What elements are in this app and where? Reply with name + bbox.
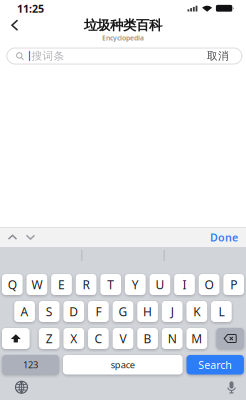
button[interactable]: Done: [210, 230, 246, 244]
staticText: Encyclopedia: [102, 33, 144, 42]
button[interactable]: Delete: [216, 328, 244, 349]
staticText: Search: [198, 358, 232, 372]
staticText: 搜词条: [32, 49, 65, 62]
staticText: F: [95, 303, 101, 319]
button[interactable]: Dictation: [227, 381, 246, 393]
staticText: E: [58, 276, 65, 292]
staticText: C: [94, 330, 102, 346]
button[interactable]: J: [162, 301, 183, 322]
staticText: A: [21, 303, 29, 319]
staticText: J: [171, 303, 174, 319]
staticText: B: [144, 330, 152, 346]
button[interactable]: M: [186, 328, 207, 349]
staticText: S: [46, 303, 53, 319]
button[interactable]: Search: [186, 355, 244, 374]
staticText: M: [191, 330, 202, 346]
staticText: Y: [132, 276, 139, 292]
button[interactable]: P: [223, 274, 244, 295]
button[interactable]: V: [113, 328, 133, 349]
button[interactable]: B: [137, 328, 158, 349]
button[interactable]: space: [63, 355, 183, 374]
button[interactable]: Q: [2, 274, 23, 295]
staticText: D: [69, 303, 78, 319]
button[interactable]: G: [113, 301, 133, 322]
staticText: G: [118, 303, 127, 319]
staticText: 123: [23, 359, 38, 371]
button[interactable]: U: [150, 274, 170, 295]
button[interactable]: X: [63, 328, 84, 349]
staticText: T: [107, 276, 114, 292]
staticText: R: [83, 276, 90, 292]
staticText: H: [143, 303, 152, 319]
staticText: P: [230, 276, 237, 292]
staticText: 11:25: [17, 1, 44, 16]
button[interactable]: L: [211, 301, 232, 322]
button[interactable]: O: [199, 274, 219, 295]
button[interactable]: W: [27, 274, 47, 295]
button[interactable]: Y: [125, 274, 146, 295]
staticText: O: [205, 276, 214, 292]
staticText: W: [31, 276, 42, 292]
button[interactable]: N: [162, 328, 182, 349]
button[interactable]: Back: [0, 19, 19, 32]
button[interactable]: D: [63, 301, 84, 322]
button[interactable]: Next keyboard: [0, 381, 28, 394]
button[interactable]: Z: [39, 328, 60, 349]
staticText: space: [111, 359, 135, 371]
button[interactable]: C: [88, 328, 109, 349]
staticText: Z: [46, 330, 53, 346]
button[interactable]: 取消: [207, 49, 242, 62]
button[interactable]: R: [76, 274, 96, 295]
staticText: Done: [210, 230, 238, 244]
button[interactable]: I: [174, 274, 195, 295]
button[interactable]: S: [39, 301, 60, 322]
button[interactable]: Previous field: [0, 235, 17, 240]
staticText: Q: [8, 276, 17, 292]
button[interactable]: F: [88, 301, 109, 322]
button[interactable]: Shift: [2, 328, 30, 349]
staticText: 垃圾种类百科: [84, 17, 162, 33]
staticText: X: [70, 330, 77, 346]
button[interactable]: E: [51, 274, 72, 295]
staticText: U: [155, 276, 164, 292]
staticText: L: [218, 303, 224, 319]
button[interactable]: K: [186, 301, 207, 322]
staticText: I: [182, 276, 186, 292]
staticText: V: [119, 330, 126, 346]
button[interactable]: Numbers: [2, 355, 59, 374]
button[interactable]: T: [100, 274, 121, 295]
button[interactable]: Search: [7, 49, 207, 62]
button[interactable]: A: [14, 301, 35, 322]
staticText: N: [168, 330, 177, 346]
staticText: 取消: [207, 49, 229, 62]
button[interactable]: Next field: [26, 235, 35, 240]
staticText: K: [193, 303, 200, 319]
button[interactable]: H: [137, 301, 158, 322]
